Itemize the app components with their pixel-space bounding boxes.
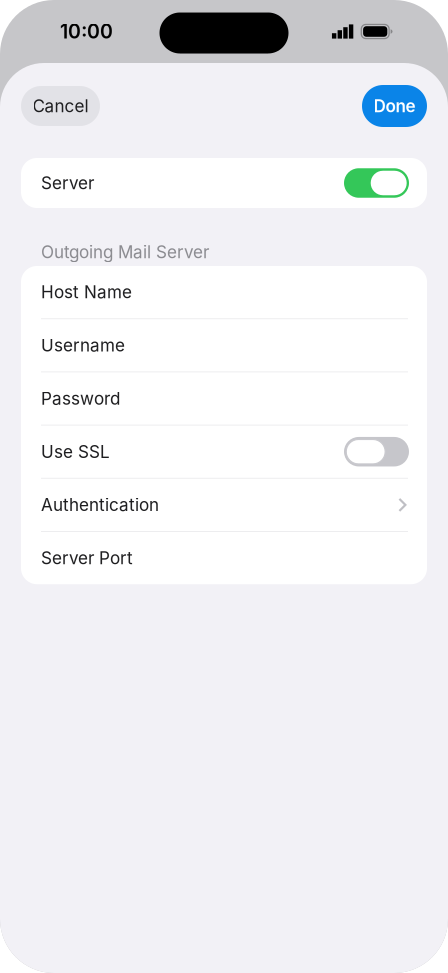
staticText: 10:00	[60, 20, 113, 43]
staticText: Server	[41, 173, 94, 193]
staticText: Use SSL	[41, 441, 110, 462]
staticText: Server Port	[41, 548, 133, 568]
staticText: Host Name	[41, 282, 132, 302]
button[interactable]: Server	[21, 157, 427, 209]
staticText: Username	[41, 335, 125, 356]
button[interactable]: Server Port	[21, 532, 427, 584]
button[interactable]: Authentication	[21, 479, 427, 531]
staticText: Password	[41, 388, 120, 409]
staticText: Authentication	[41, 495, 159, 515]
button[interactable]: Password	[21, 372, 427, 425]
staticText: Outgoing Mail Server	[41, 242, 209, 262]
staticText: Done	[373, 96, 415, 116]
button[interactable]: Done	[362, 85, 427, 127]
button[interactable]: Username	[21, 319, 427, 371]
staticText: Cancel	[32, 96, 88, 116]
button[interactable]: Use SSL	[21, 426, 427, 478]
button[interactable]: Host Name	[21, 266, 427, 318]
button[interactable]: Cancel	[21, 86, 100, 126]
